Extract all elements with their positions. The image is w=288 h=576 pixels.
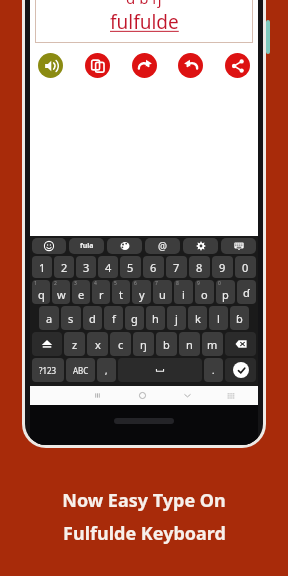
staticText: y [139, 287, 145, 302]
button[interactable]: 8 [174, 280, 193, 304]
button[interactable]: Copy [85, 53, 110, 78]
staticText: ɗ [243, 285, 250, 300]
button[interactable]: h [146, 306, 165, 330]
button[interactable]: 2 [54, 256, 74, 278]
staticText: u [159, 287, 166, 302]
staticText: ɗ ɓ ŋ [126, 0, 162, 8]
button[interactable]: Keyboard layout [221, 238, 256, 254]
staticText: l [217, 311, 220, 326]
staticText: 1 [39, 260, 46, 275]
button[interactable]: z [64, 332, 85, 356]
button[interactable]: j [167, 306, 186, 330]
button[interactable]: l [209, 306, 228, 330]
staticText: g [131, 311, 138, 326]
button[interactable]: Recents [75, 386, 120, 405]
staticText: 8 [196, 260, 203, 275]
button[interactable]: k [188, 306, 207, 330]
button[interactable]: b [156, 332, 177, 356]
button[interactable]: s [61, 306, 81, 330]
button[interactable]: Space [118, 358, 202, 382]
staticText: , [105, 364, 108, 376]
button[interactable]: ɗ [237, 280, 256, 304]
staticText: 5 [114, 280, 117, 287]
button[interactable]: 5 [120, 256, 141, 278]
staticText: j [175, 311, 178, 326]
staticText: ?123 [39, 365, 57, 376]
staticText: e [78, 287, 85, 302]
button[interactable]: Enter [225, 358, 256, 382]
staticText: s [68, 311, 74, 326]
staticText: 8 [176, 280, 179, 287]
button[interactable]: Undo [178, 53, 203, 78]
button[interactable]: g [125, 306, 144, 330]
staticText: r [99, 287, 104, 302]
staticText: p [222, 287, 229, 302]
button[interactable]: 9 [195, 280, 214, 304]
button[interactable]: Settings [183, 238, 218, 254]
button[interactable]: ɓ [230, 306, 249, 330]
button[interactable]: 9 [212, 256, 233, 278]
staticText: . [212, 364, 215, 376]
button[interactable]: Emoji [32, 238, 66, 254]
button[interactable]: Redo [132, 53, 157, 78]
button[interactable]: 6 [143, 256, 164, 278]
staticText: q [38, 287, 45, 302]
button[interactable]: 3 [72, 280, 90, 304]
button[interactable]: 6 [132, 280, 151, 304]
button[interactable]: , [97, 358, 116, 382]
staticText: f [112, 311, 116, 326]
button[interactable]: . [204, 358, 223, 382]
button[interactable]: d [83, 306, 102, 330]
staticText: b [163, 337, 170, 352]
button[interactable]: @ [145, 238, 180, 254]
staticText: 3 [83, 260, 90, 275]
button[interactable]: Theme [107, 238, 142, 254]
button[interactable]: 0 [235, 256, 256, 278]
staticText: h [152, 311, 159, 326]
staticText: 4 [105, 260, 112, 275]
button[interactable]: x [87, 332, 108, 356]
button[interactable]: 1 [32, 256, 52, 278]
staticText: m [207, 337, 218, 352]
staticText: 3 [74, 280, 77, 287]
staticText: 5 [127, 260, 134, 275]
button[interactable]: ?123 [32, 358, 64, 382]
button[interactable]: 4 [98, 256, 118, 278]
button[interactable]: Change keyboard [210, 386, 251, 405]
button[interactable]: a [39, 306, 59, 330]
staticText: 0 [218, 280, 221, 287]
staticText: 9 [219, 260, 226, 275]
button[interactable]: ABC [66, 358, 95, 382]
staticText: ŋ [140, 337, 147, 352]
button[interactable]: Hide keyboard [165, 386, 210, 405]
staticText: k [195, 311, 201, 326]
button[interactable]: Home [120, 386, 165, 405]
staticText: Now Easy Type On [62, 488, 226, 513]
button[interactable]: 3 [76, 256, 96, 278]
button[interactable]: 1 [32, 280, 50, 304]
button[interactable]: Shift [32, 332, 62, 356]
button[interactable]: 7 [166, 256, 187, 278]
button[interactable]: c [110, 332, 131, 356]
button[interactable]: m [202, 332, 223, 356]
button[interactable]: n [179, 332, 200, 356]
staticText: 6 [150, 260, 157, 275]
button[interactable]: 5 [112, 280, 130, 304]
button[interactable]: 2 [52, 280, 70, 304]
button[interactable]: f [104, 306, 123, 330]
staticText: 4 [94, 280, 97, 287]
staticText: a [46, 311, 53, 326]
staticText: z [72, 337, 78, 352]
staticText: 0 [242, 260, 249, 275]
button[interactable]: Share [225, 53, 250, 78]
button[interactable]: Speak [38, 53, 63, 78]
button[interactable]: 4 [92, 280, 110, 304]
button[interactable]: 8 [189, 256, 210, 278]
staticText: 9 [197, 280, 200, 287]
staticText: t [119, 287, 123, 302]
button[interactable]: 7 [153, 280, 172, 304]
button[interactable]: ŋ [133, 332, 154, 356]
button[interactable]: Backspace [225, 332, 256, 356]
button[interactable]: fula [69, 238, 104, 254]
button[interactable]: 0 [216, 280, 235, 304]
